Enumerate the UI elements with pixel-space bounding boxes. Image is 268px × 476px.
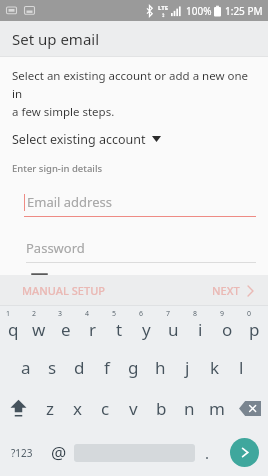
button[interactable]: 6 [133,306,160,347]
button[interactable]: 1 [0,306,26,347]
button[interactable]: NEXT [202,277,268,304]
button[interactable]: Backspace [231,388,268,429]
button[interactable]: k [201,347,228,388]
staticText: 3 [58,309,63,319]
staticText: f [104,356,110,379]
button[interactable]: @ [43,429,74,476]
staticText: q [8,318,19,341]
button[interactable]: d [66,347,93,388]
button[interactable]: Enter [230,438,259,467]
button[interactable]: . [195,429,220,476]
staticText: NEXT [212,283,240,298]
staticText: p [249,318,260,341]
staticText: 6 [139,309,144,319]
button[interactable]: Email address [24,187,256,217]
staticText: Set up email [12,29,100,49]
button[interactable]: 3 [52,306,79,347]
staticText: Select existing account [12,131,146,148]
staticText: l [239,356,244,379]
button[interactable]: l [228,347,255,388]
button[interactable]: x [63,388,91,429]
button[interactable]: ?123 [0,429,43,476]
staticText: . [205,443,210,463]
button[interactable]: f [93,347,120,388]
staticText: w [32,318,46,341]
button[interactable]: Show password [32,274,256,275]
button[interactable]: a [13,347,39,388]
button[interactable]: v [119,388,147,429]
staticText: y [142,318,151,341]
button[interactable]: 9 [214,306,241,347]
staticText: r [89,318,97,341]
staticText: g [128,356,139,379]
staticText: i [198,318,203,341]
button[interactable]: 0 [241,306,268,347]
button[interactable]: j [174,347,201,388]
staticText: o [222,318,233,341]
button[interactable]: Password [26,233,256,263]
staticText: m [209,397,225,420]
button[interactable]: n [175,388,203,429]
staticText: 2 [32,309,37,319]
button[interactable]: g [120,347,147,388]
staticText: 7 [166,309,171,319]
staticText: c [101,397,110,420]
button[interactable]: Select existing account [12,128,256,150]
button[interactable]: 7 [160,306,187,347]
staticText: 1 [6,309,11,319]
staticText: s [48,356,57,379]
staticText: k [210,356,220,379]
button[interactable]: Shift [0,388,36,429]
staticText: z [46,397,54,420]
button[interactable]: 5 [106,306,133,347]
staticText: v [129,397,138,420]
button[interactable]: m [203,388,231,429]
staticText: 0 [247,309,252,319]
staticText: Email address [27,193,112,211]
staticText: b [156,397,167,420]
staticText: ?123 [11,446,33,460]
staticText: t [116,318,123,341]
staticText: j [185,356,190,379]
staticText: 4 [85,309,90,319]
staticText: e [61,318,71,341]
staticText: 8 [193,309,198,319]
button[interactable]: h [147,347,174,388]
button[interactable]: b [147,388,175,429]
button[interactable]: 8 [187,306,214,347]
button[interactable]: s [39,347,66,388]
staticText: Enter sign-in details [12,162,103,175]
staticText: u [168,318,179,341]
button[interactable]: c [91,388,119,429]
button[interactable]: 4 [79,306,106,347]
staticText: 100% [186,4,212,18]
staticText: @ [51,441,67,464]
button[interactable]: 2 [26,306,52,347]
staticText: Select an existing account or add a new … [12,68,256,119]
staticText: x [73,397,82,420]
staticText: a [21,356,31,379]
button[interactable]: MANUAL SETUP [0,277,115,304]
staticText: 5 [112,309,117,319]
staticText: n [184,397,195,420]
staticText: 1:25 PM [225,4,263,18]
staticText: ↕ [161,12,166,18]
staticText: Password [26,239,85,257]
staticText: d [74,356,85,379]
staticText: LTE [158,4,169,12]
staticText: h [155,356,166,379]
staticText: 9 [220,309,225,319]
button[interactable]: z [36,388,63,429]
